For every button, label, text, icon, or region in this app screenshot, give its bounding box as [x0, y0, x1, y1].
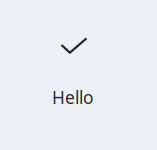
- staticText: Hello: [52, 86, 93, 109]
